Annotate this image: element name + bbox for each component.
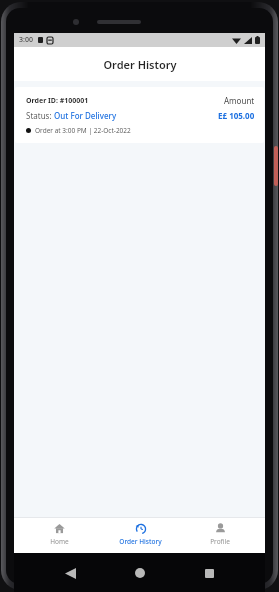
- button[interactable]: Back: [57, 560, 83, 586]
- staticText: Order History: [103, 57, 177, 72]
- button[interactable]: Recent apps: [196, 560, 222, 586]
- button[interactable]: Profile: [184, 517, 256, 553]
- staticText: Order at 3:00 PM | 22-Oct-2022: [35, 126, 131, 135]
- staticText: Status:: [26, 110, 54, 121]
- button[interactable]: Order ID: #100001: [15, 87, 264, 143]
- button[interactable]: Order History: [104, 517, 176, 553]
- button[interactable]: Home: [23, 517, 95, 553]
- staticText: Amount: [224, 95, 255, 106]
- button[interactable]: Home: [127, 560, 153, 586]
- staticText: Home: [50, 537, 69, 546]
- staticText: Order History: [119, 537, 162, 546]
- staticText: Out For Delivery: [54, 110, 117, 121]
- staticText: Profile: [210, 537, 230, 546]
- staticText: Order ID: #100001: [26, 96, 89, 106]
- staticText: E£ 105.00: [218, 110, 255, 121]
- staticText: 3:00: [19, 35, 33, 45]
